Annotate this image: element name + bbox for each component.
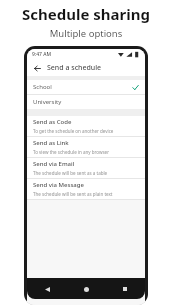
- staticText: Multiple options: [0, 27, 172, 40]
- staticText: Send a schedule: [47, 63, 102, 73]
- staticText: Send via Message: [33, 181, 84, 189]
- staticText: To get the schedule on another device: [33, 128, 114, 134]
- button[interactable]: Send as Code: [27, 116, 145, 136]
- staticText: Send as Link: [33, 139, 69, 147]
- staticText: University: [33, 98, 62, 106]
- button[interactable]: School: [27, 80, 145, 94]
- button[interactable]: Send via Email: [27, 158, 145, 178]
- button[interactable]: Back: [41, 283, 53, 295]
- staticText: The schedule will be sent as plain text: [33, 191, 113, 197]
- staticText: The schedule will be sent as a table: [33, 170, 108, 176]
- button[interactable]: University: [27, 95, 145, 109]
- staticText: Schedule sharing: [0, 4, 172, 24]
- button[interactable]: Send as Link: [27, 137, 145, 157]
- staticText: Send via Email: [33, 160, 75, 168]
- button[interactable]: Recent apps: [119, 283, 131, 295]
- button[interactable]: Home: [80, 283, 92, 295]
- staticText: Send as Code: [33, 118, 72, 126]
- staticText: School: [33, 83, 52, 91]
- staticText: To view the schedule in any browser: [33, 149, 109, 155]
- button[interactable]: Back: [32, 63, 43, 74]
- staticText: 9:47 AM: [32, 51, 52, 58]
- button[interactable]: Send via Message: [27, 179, 145, 199]
